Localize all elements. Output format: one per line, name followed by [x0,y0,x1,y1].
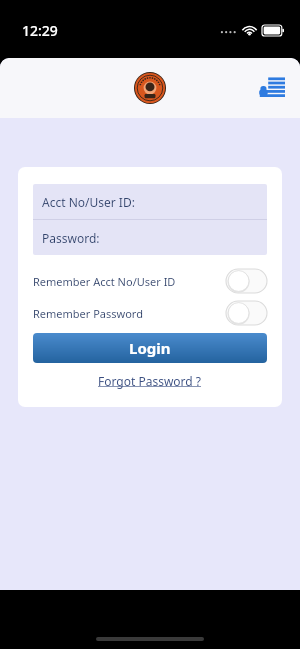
staticText: Remember Password [33,306,226,321]
staticText: Forgot Password ? [98,373,202,389]
staticText: Acct No/User ID: [42,194,135,210]
button[interactable]: Password: [33,220,267,255]
button[interactable]: Forgot Password ? [94,372,206,390]
staticText: Password: [42,230,100,246]
button[interactable]: Home logo [133,71,167,105]
staticText: Remember Acct No/User ID [33,274,226,289]
button[interactable]: Menu [252,69,290,107]
button[interactable]: Acct No/User ID: [33,184,267,219]
button[interactable]: Login [33,333,267,363]
button[interactable]: Remember Acct No/User ID [33,267,267,295]
staticText: Login [129,338,171,358]
staticText: 12:29 [22,21,58,40]
button[interactable]: Remember Password [33,299,267,327]
